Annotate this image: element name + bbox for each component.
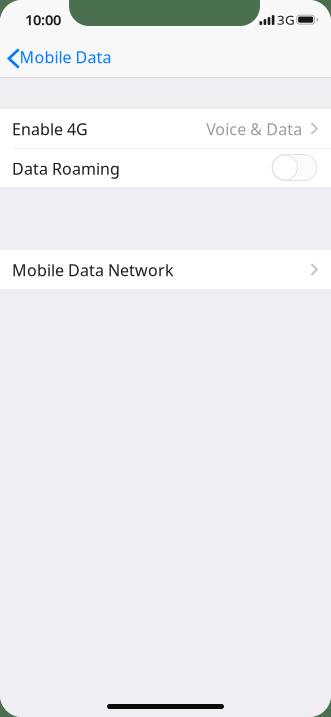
button[interactable]: Mobile Data	[0, 34, 121, 77]
staticText: Voice & Data	[206, 118, 302, 140]
button[interactable]: Data Roaming	[272, 154, 317, 181]
staticText: 10:00	[25, 10, 61, 29]
staticText: Mobile Data Network	[12, 259, 174, 281]
staticText: Data Roaming	[12, 158, 120, 179]
staticText: Mobile Data	[19, 46, 111, 68]
button[interactable]: Mobile Data Network	[0, 250, 331, 289]
staticText: 3G	[277, 11, 295, 28]
staticText: Enable 4G	[12, 118, 88, 140]
button[interactable]: Enable 4G	[0, 109, 331, 148]
